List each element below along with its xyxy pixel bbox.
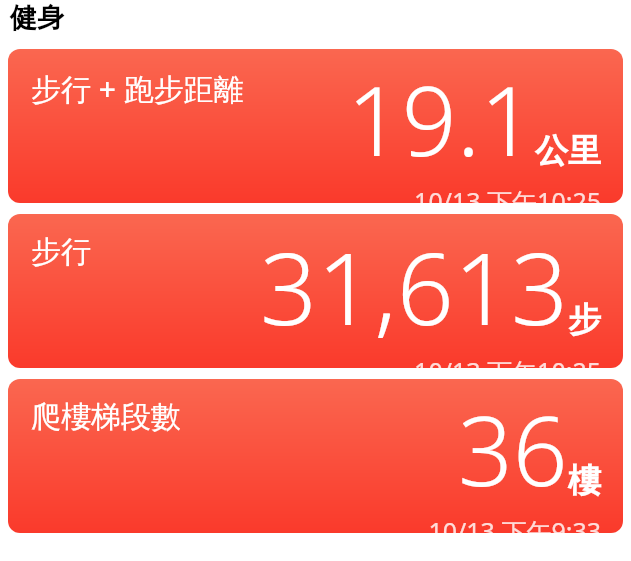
staticText: 19.1: [347, 53, 535, 184]
staticText: 步: [568, 299, 601, 341]
staticText: 爬樓梯段數: [31, 398, 181, 436]
staticText: 步行: [31, 233, 91, 271]
staticText: 10/13 下午10:25: [414, 184, 601, 203]
staticText: 公里: [535, 130, 601, 172]
staticText: 步行 + 跑步距離: [31, 68, 244, 109]
staticText: 樓: [568, 460, 601, 502]
staticText: 31,613: [260, 218, 568, 354]
button[interactable]: 爬樓梯段數: [8, 379, 623, 533]
staticText: 10/13 下午10:25: [414, 354, 601, 368]
staticText: 健身: [10, 1, 64, 35]
button[interactable]: 步行 + 跑步距離: [8, 49, 623, 203]
staticText: 10/13 下午9:33: [428, 514, 601, 533]
staticText: 36: [458, 383, 568, 514]
button[interactable]: 步行: [8, 214, 623, 368]
